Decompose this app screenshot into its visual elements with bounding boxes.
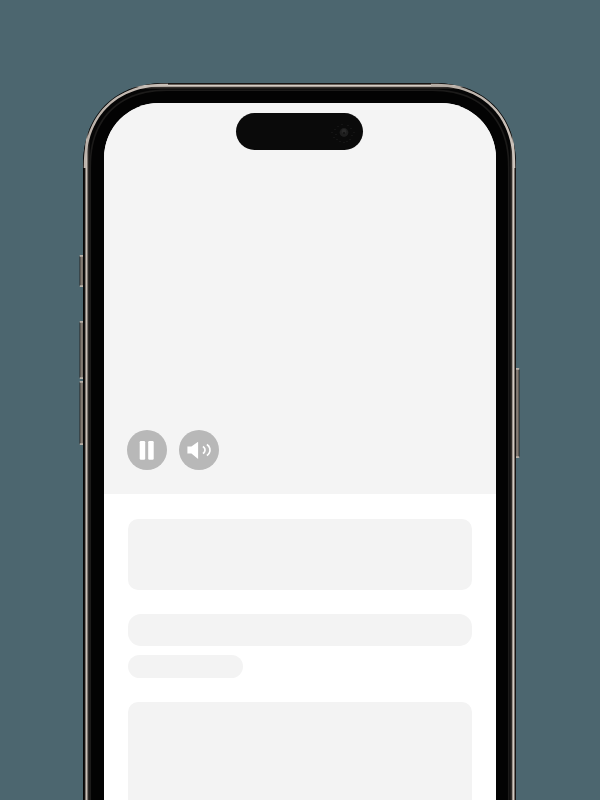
- button[interactable]: Pause: [127, 430, 167, 470]
- button[interactable]: Volume: [179, 430, 219, 470]
